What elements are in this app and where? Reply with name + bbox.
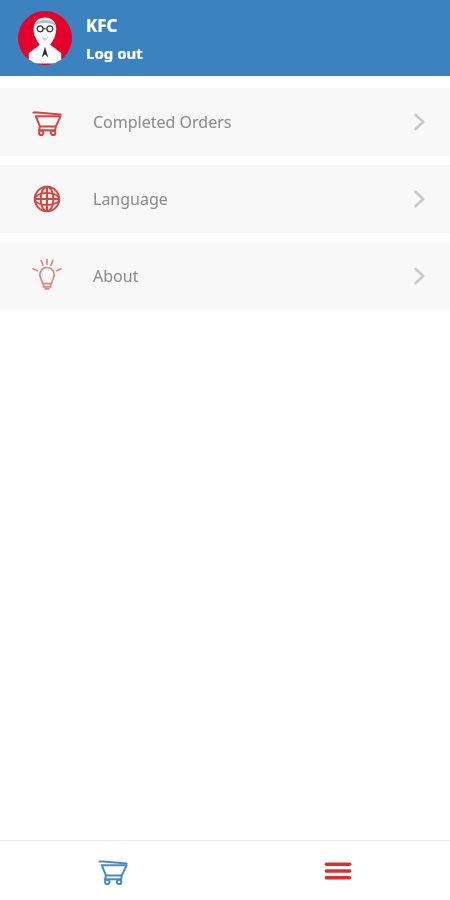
button[interactable]: Log out xyxy=(86,43,143,63)
staticText: Log out xyxy=(86,43,143,63)
button[interactable]: Language xyxy=(0,165,450,233)
button[interactable]: Profile xyxy=(18,11,72,65)
button[interactable]: Menu xyxy=(225,841,450,900)
button[interactable]: Cart xyxy=(0,841,225,900)
staticText: KFC xyxy=(86,14,118,37)
button[interactable]: Completed Orders xyxy=(0,88,450,156)
staticText: Completed Orders xyxy=(93,111,232,133)
staticText: About xyxy=(93,265,139,287)
button[interactable]: About xyxy=(0,242,450,310)
staticText: Language xyxy=(93,188,168,210)
